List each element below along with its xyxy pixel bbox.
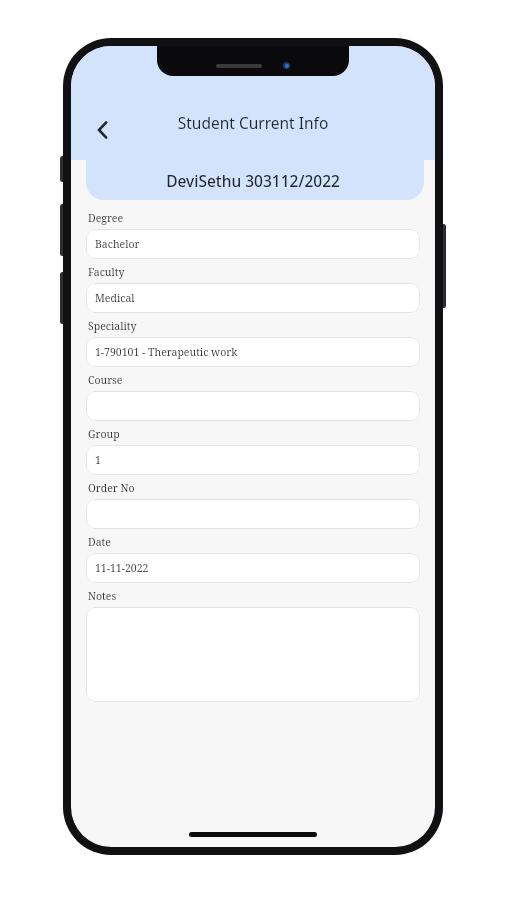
button[interactable]: 1 (86, 445, 420, 475)
staticText: Faculty (88, 265, 125, 279)
button[interactable]: Back (81, 108, 125, 152)
staticText: 1-790101 - Therapeutic work (95, 345, 238, 359)
staticText: DeviSethu 303112/2022 (71, 170, 435, 191)
staticText: Date (88, 535, 111, 549)
staticText: 1 (95, 453, 101, 467)
button[interactable]: Medical (86, 283, 420, 313)
staticText: Speciality (88, 319, 137, 333)
staticText: Student Current Info (71, 112, 435, 133)
staticText: Degree (88, 211, 124, 225)
staticText: Course (88, 373, 123, 387)
button[interactable]: 11-11-2022 (86, 553, 420, 583)
staticText: Order No (88, 481, 135, 495)
button[interactable] (86, 607, 420, 702)
staticText: Group (88, 427, 120, 441)
staticText: Notes (88, 589, 117, 603)
staticText: Medical (95, 291, 135, 305)
button[interactable] (86, 499, 420, 529)
staticText: 11-11-2022 (95, 561, 149, 575)
button[interactable]: 1-790101 - Therapeutic work (86, 337, 420, 367)
button[interactable] (86, 391, 420, 421)
button[interactable]: Bachelor (86, 229, 420, 259)
staticText: Bachelor (95, 237, 140, 251)
